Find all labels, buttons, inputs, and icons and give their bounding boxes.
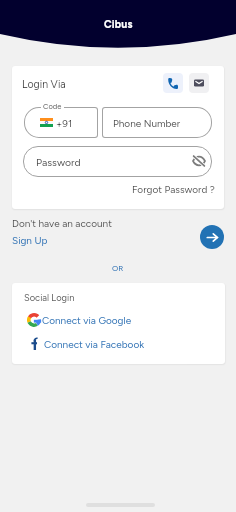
button[interactable]: Continue (200, 225, 224, 249)
staticText: Connect via Google (42, 314, 132, 326)
button[interactable]: Connect via Google (12, 310, 225, 329)
staticText: Cibus (104, 18, 133, 31)
staticText: Code (43, 102, 62, 111)
button[interactable]: Login with phone (163, 73, 183, 93)
staticText: Password (36, 156, 81, 168)
staticText: +91 (56, 117, 73, 129)
staticText: Sign Up (12, 234, 48, 246)
button[interactable]: Phone Number (102, 107, 212, 138)
button[interactable]: Toggle password visibility (190, 152, 207, 169)
button[interactable]: Connect via Facebook (12, 334, 225, 353)
staticText: Forgot Password ? (132, 183, 215, 195)
staticText: OR (112, 263, 124, 273)
button[interactable]: +91 (24, 107, 98, 138)
button[interactable]: Sign Up (12, 234, 48, 246)
staticText: Connect via Facebook (44, 338, 145, 350)
staticText: Phone Number (113, 117, 181, 129)
button[interactable]: Forgot Password ? (132, 183, 215, 195)
staticText: Social Login (24, 292, 75, 303)
button[interactable]: Login with email (189, 73, 209, 93)
button[interactable]: Password (23, 146, 212, 177)
staticText: Don't have an account (12, 217, 112, 229)
staticText: Login Via (22, 78, 66, 91)
